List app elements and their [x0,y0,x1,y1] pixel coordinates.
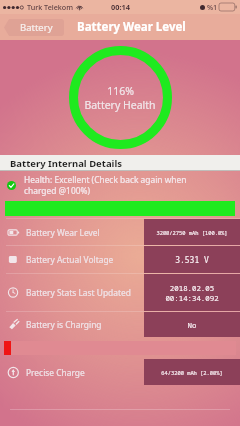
staticText: Battery is Charging [26,319,144,330]
staticText: 3200/2750 mAh [100.0%] [146,229,238,236]
staticText: 3.531 V [146,254,238,265]
button[interactable]: Battery Stats Last Updated [0,274,240,311]
staticText: 2018.02.05 00:14:34.092 [146,283,238,303]
staticText: Turk Telekom [27,2,74,12]
staticText: Battery Actual Voltage [26,254,144,265]
staticText: Precise Charge [26,367,144,378]
staticText: 00:14 [111,2,130,12]
staticText: Battery Internal Details [10,157,123,170]
button[interactable]: Back to Battery [4,19,64,36]
button[interactable]: Precise Charge [0,359,240,385]
staticText: Battery Health [84,98,156,112]
staticText: 64/3200 mAh [2.00%] [146,369,238,376]
staticText: 116% [107,84,134,98]
button[interactable]: Battery Wear Level [0,219,240,245]
staticText: Battery Stats Last Updated [26,287,144,298]
staticText: Battery [20,21,53,34]
button[interactable]: Battery Actual Voltage [0,246,240,273]
staticText: Health: Excellent (Check back again when… [24,174,234,196]
staticText: No [146,320,238,330]
staticText: Battery Wear Level [77,19,186,35]
button[interactable]: Battery is Charging [0,312,240,337]
staticText: %1 [207,2,218,12]
button[interactable]: Health: Excellent (Check back again when… [0,171,240,199]
staticText: Battery Wear Level [26,227,144,238]
